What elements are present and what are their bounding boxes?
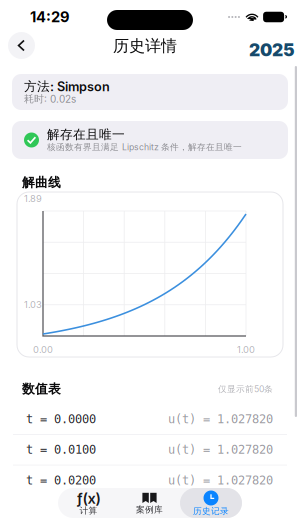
staticText: 历史记录 bbox=[193, 505, 229, 516]
staticText: u(t) = 1.027820 bbox=[168, 473, 273, 487]
staticText: 数值表 bbox=[22, 381, 61, 397]
staticText: 计算 bbox=[79, 505, 97, 516]
staticText: u(t) = 1.027820 bbox=[168, 443, 273, 457]
staticText: 历史详情 bbox=[113, 36, 177, 56]
staticText: 1.03 bbox=[24, 299, 42, 310]
staticText: 1.89 bbox=[24, 193, 42, 204]
staticText: t = 0.0200 bbox=[26, 473, 96, 487]
staticText: u(t) = 1.027820 bbox=[168, 412, 273, 426]
button[interactable]: 案例库 bbox=[119, 488, 180, 518]
button[interactable]: 历史记录 bbox=[180, 488, 242, 518]
button[interactable]: Back bbox=[8, 32, 35, 59]
staticText: 0.00 bbox=[33, 344, 53, 355]
staticText: 2025 bbox=[249, 39, 295, 60]
staticText: t = 0.0100 bbox=[26, 443, 96, 457]
staticText: 核函数有界且满足 Lipschitz 条件，解存在且唯一 bbox=[47, 141, 242, 152]
staticText: 解存在且唯一 bbox=[47, 126, 125, 142]
staticText: 方法: Simpson bbox=[24, 78, 110, 94]
staticText: 14:29 bbox=[30, 8, 70, 26]
staticText: 案例库 bbox=[136, 504, 163, 515]
staticText: 耗时: 0.02s bbox=[24, 93, 76, 105]
staticText: t = 0.0000 bbox=[26, 412, 96, 426]
staticText: 仅显示前50条 bbox=[218, 383, 273, 394]
staticText: ƒ(x) bbox=[76, 490, 100, 507]
staticText: 解曲线 bbox=[22, 174, 61, 190]
staticText: 1.00 bbox=[237, 344, 255, 355]
button[interactable]: ƒ(x) bbox=[58, 488, 119, 518]
